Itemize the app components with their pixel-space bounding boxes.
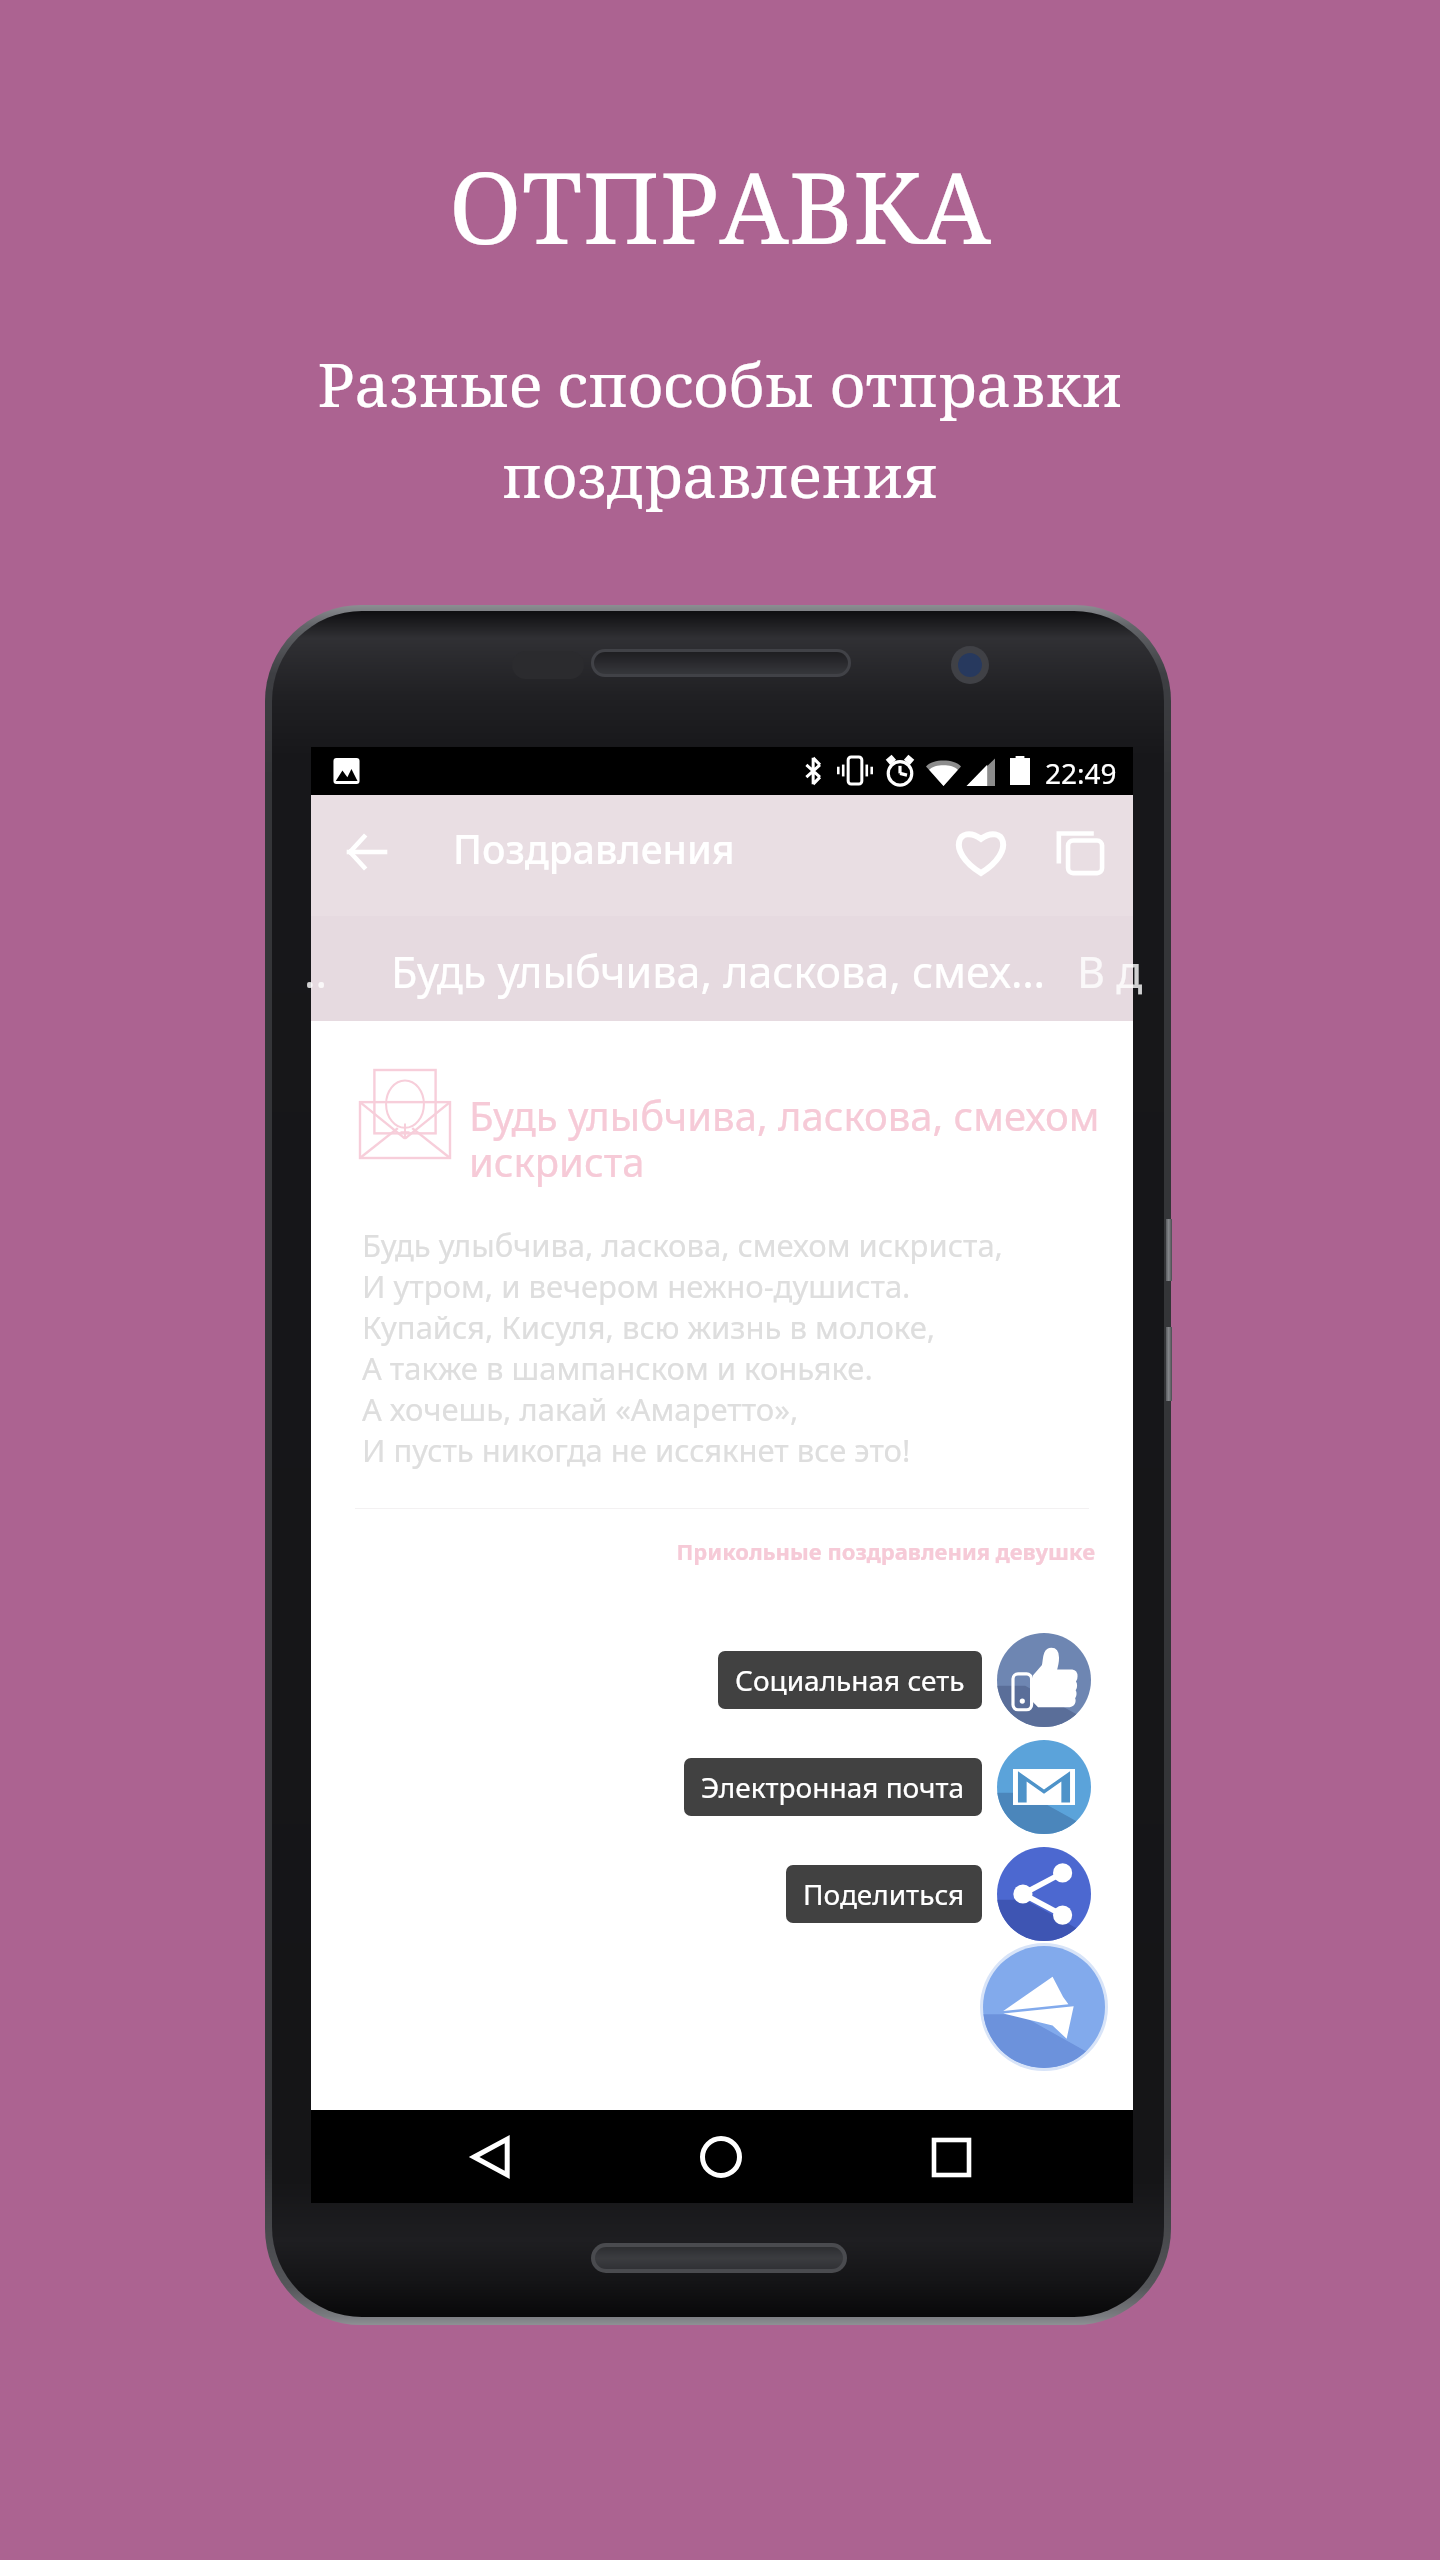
staticText: Электронная почта (701, 1768, 965, 1806)
staticText: Будь улыбчива, ласкова, смех… (391, 942, 1045, 1001)
staticText: Будь улыбчива, ласкова, смехом искриста (469, 1088, 1109, 1189)
button[interactable]: .. (233, 916, 391, 1021)
button[interactable]: Recents (911, 2117, 991, 2197)
button[interactable]: В д (1071, 916, 1211, 1021)
button[interactable]: Home (681, 2117, 761, 2197)
staticText: Будь улыбчива, ласкова, смехом искриста,… (362, 1224, 1003, 1471)
staticText: Разные способы отправки поздравления (0, 342, 1440, 516)
button[interactable]: Поделиться (311, 1847, 1091, 1941)
button[interactable]: Favorite (941, 810, 1021, 890)
staticText: Поздравления (453, 822, 735, 875)
staticText: Прикольные поздравления девушке (311, 1536, 1095, 1566)
staticText: 22:49 (1045, 754, 1117, 792)
staticText: Социальная сеть (735, 1661, 965, 1699)
button[interactable]: Будь улыбчива, ласкова, смех… (391, 916, 1067, 1021)
button[interactable]: Электронная почта (311, 1740, 1091, 1834)
button[interactable]: Back (333, 818, 401, 886)
staticText: В д (1077, 942, 1143, 1001)
button[interactable]: Send (980, 1943, 1108, 2071)
staticText: .. (304, 942, 328, 1001)
staticText: Поделиться (803, 1875, 965, 1913)
button[interactable]: Copy (1040, 812, 1120, 892)
staticText: ОТПРАВКА (0, 139, 1440, 272)
button[interactable]: Социальная сеть (311, 1633, 1091, 1727)
button[interactable]: Back (451, 2117, 531, 2197)
